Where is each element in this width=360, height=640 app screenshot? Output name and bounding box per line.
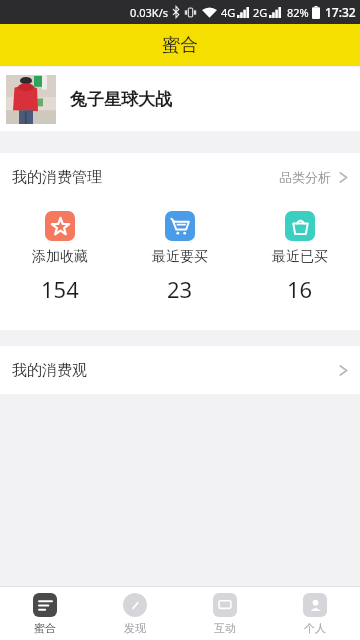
button[interactable]: 最近已买 xyxy=(240,207,360,308)
staticText: 我的消费管理 xyxy=(12,168,102,187)
button[interactable]: 发现 xyxy=(90,587,180,640)
staticText: 16 xyxy=(287,274,313,304)
staticText: 互动 xyxy=(214,621,236,635)
staticText: 23 xyxy=(167,274,193,304)
staticText: 82% xyxy=(287,5,309,20)
staticText: 兔子星球大战 xyxy=(70,89,172,110)
other: More xyxy=(339,363,348,378)
staticText: 我的消费观 xyxy=(12,361,87,380)
staticText: 蜜合 xyxy=(162,34,198,57)
staticText: 17:32 xyxy=(325,4,356,20)
button[interactable]: 互动 xyxy=(180,587,270,640)
staticText: 添加收藏 xyxy=(32,248,88,266)
button[interactable]: 添加收藏 xyxy=(0,207,120,308)
button[interactable]: 兔子星球大战 xyxy=(0,67,360,131)
button[interactable]: 我的消费观 xyxy=(0,346,360,394)
staticText: 发现 xyxy=(124,621,146,635)
staticText: 4G xyxy=(221,5,236,20)
button[interactable]: 我的消费管理 xyxy=(0,153,360,201)
button[interactable]: 蜜合 xyxy=(0,587,90,640)
staticText: 2G xyxy=(253,5,268,20)
staticText: 154 xyxy=(41,274,79,304)
button[interactable]: 最近要买 xyxy=(120,207,240,308)
staticText: 最近要买 xyxy=(152,248,208,266)
staticText: 蜜合 xyxy=(34,621,56,635)
staticText: 最近已买 xyxy=(272,248,328,266)
staticText: 品类分析 xyxy=(279,169,331,185)
other: More xyxy=(339,170,348,185)
staticText: 个人 xyxy=(304,621,326,635)
staticText: 0.03K/s xyxy=(130,5,168,20)
button[interactable]: 个人 xyxy=(270,587,360,640)
